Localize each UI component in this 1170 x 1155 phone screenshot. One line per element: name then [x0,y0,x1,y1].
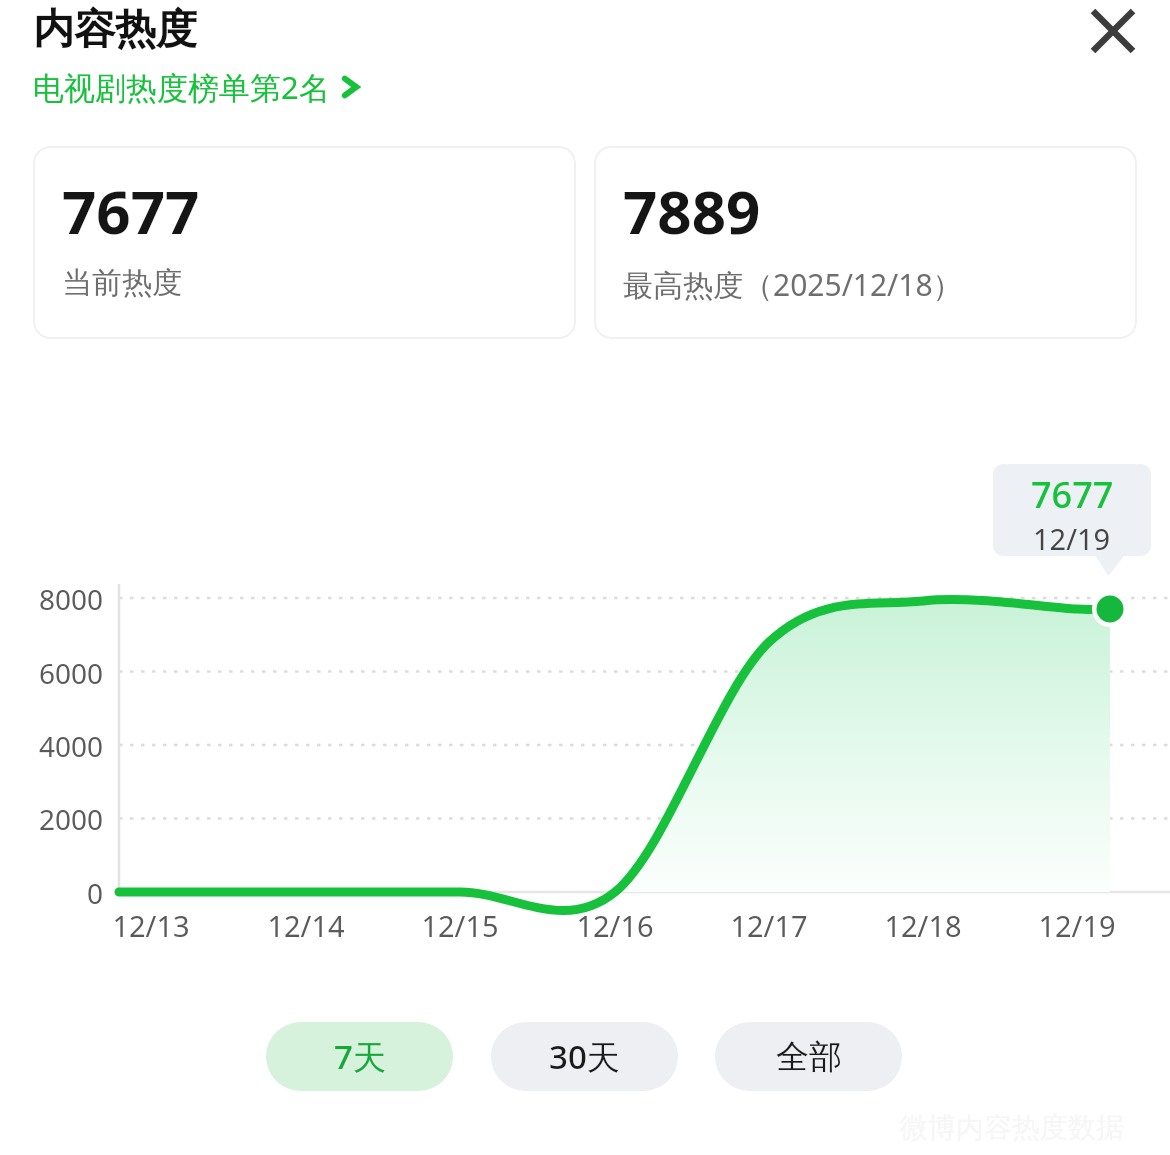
staticText: 0 [86,874,103,912]
button[interactable]: 7889 [594,146,1137,339]
staticText: 30天 [549,1034,620,1079]
staticText: 12/17 [730,906,808,945]
button[interactable]: 电视剧热度榜单第2名 [33,66,362,108]
staticText: 6000 [38,654,103,692]
staticText: 2000 [38,800,103,838]
staticText: 12/15 [421,906,499,945]
staticText: 最高热度（2025/12/18） [623,264,963,305]
staticText: 微博内容热度数据 [900,1110,1124,1145]
button[interactable]: 30天 [491,1022,678,1091]
staticText: 7天 [334,1034,386,1079]
staticText: 12/18 [884,906,962,945]
staticText: 12/14 [267,906,345,945]
staticText: 12/19 [1038,906,1116,945]
staticText: 全部 [776,1036,842,1078]
staticText: 4000 [38,727,103,765]
staticText: 12/13 [112,906,190,945]
staticText: 当前热度 [62,264,182,302]
staticText: 内容热度 [33,4,197,56]
staticText: 7889 [623,170,761,252]
staticText: 8000 [38,580,103,618]
staticText: 电视剧热度榜单第2名 [33,66,330,108]
staticText: 12/19 [1033,519,1111,556]
button[interactable]: 全部 [715,1022,902,1091]
staticText: 7677 [62,170,200,252]
button[interactable]: Close [1069,0,1157,75]
button[interactable]: 7天 [266,1022,453,1091]
button[interactable]: 7677 [33,146,576,339]
staticText: 7677 [1031,470,1114,519]
staticText: 12/16 [576,906,654,945]
